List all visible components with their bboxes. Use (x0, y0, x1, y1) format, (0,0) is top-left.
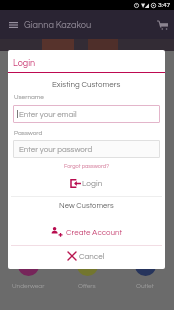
staticText: Create Account (66, 228, 123, 236)
button[interactable]: Shopping cart (153, 16, 171, 34)
staticText: Login (82, 179, 103, 188)
staticText: Gianna Kazakou (24, 20, 92, 29)
button[interactable]: Enter your password (13, 140, 160, 158)
staticText: 3:47 (158, 2, 171, 9)
button[interactable]: Underwear (2, 255, 54, 290)
staticText: Enter your password (19, 145, 93, 153)
staticText: Outlet (136, 283, 154, 290)
staticText: Existing Customers (52, 80, 121, 88)
button[interactable]: Enter your email (13, 105, 160, 123)
button[interactable]: Outlet (119, 255, 171, 290)
button[interactable]: Create Account (48, 225, 126, 238)
button[interactable]: Offers (61, 255, 113, 290)
staticText: Login (13, 59, 36, 68)
staticText: Underwear (12, 283, 45, 290)
staticText: Username (14, 94, 44, 101)
button[interactable]: Forgot password? (61, 162, 113, 170)
button[interactable]: Cancel (65, 251, 108, 261)
staticText: Offers (78, 283, 96, 290)
staticText: Cancel (79, 252, 105, 260)
button[interactable]: Login (67, 178, 106, 189)
staticText: New Customers (59, 202, 114, 210)
staticText: Password (14, 130, 43, 137)
staticText: Enter your email (19, 110, 77, 118)
button[interactable]: Open navigation menu (4, 16, 22, 34)
staticText: Forgot password? (64, 163, 110, 169)
